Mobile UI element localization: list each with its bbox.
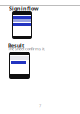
staticText: Sign in flow (9, 5, 39, 12)
staticText: The sheet confirms it. (8, 46, 45, 51)
staticText: 7 (39, 103, 41, 108)
staticText: Result (8, 42, 24, 49)
